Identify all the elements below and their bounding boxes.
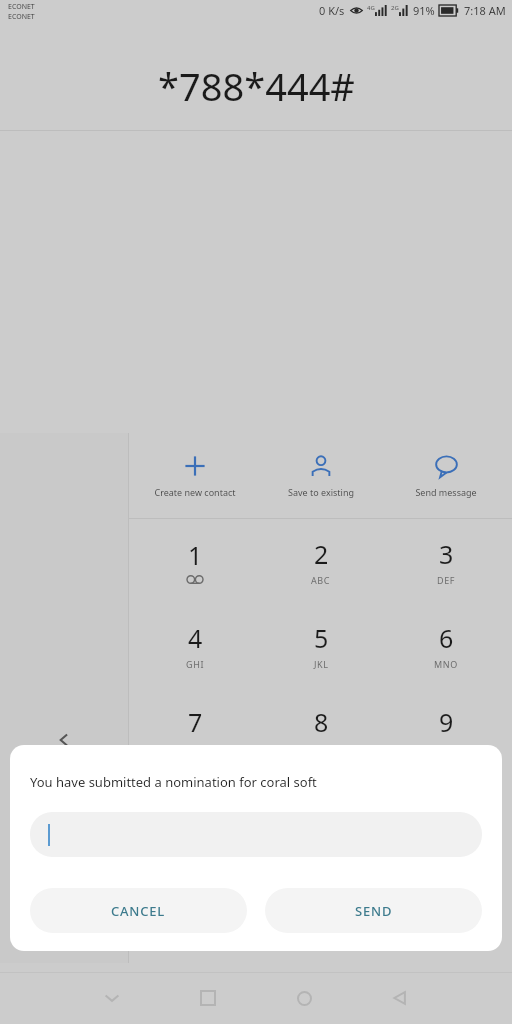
staticText: 2: [314, 537, 329, 571]
staticText: 1: [188, 538, 203, 572]
button[interactable]: Save to existing: [261, 447, 381, 504]
staticText: 7: [188, 705, 203, 739]
button[interactable]: 1: [135, 519, 255, 603]
staticText: 6: [439, 621, 454, 655]
button[interactable]: 7: [135, 687, 255, 771]
staticText: You have submitted a nomination for cora…: [30, 773, 317, 791]
staticText: PQRS: [182, 742, 208, 754]
staticText: 9: [439, 705, 454, 739]
button[interactable]: 9: [386, 687, 506, 771]
staticText: WXYZ: [433, 742, 460, 754]
staticText: 8: [314, 705, 329, 739]
staticText: SEND: [355, 902, 393, 920]
staticText: ECONET: [8, 12, 35, 22]
button[interactable]: 5: [261, 603, 381, 687]
staticText: 3: [439, 537, 454, 571]
button[interactable]: 6: [386, 603, 506, 687]
staticText: DEF: [437, 574, 456, 586]
button[interactable]: Expand: [44, 720, 84, 760]
staticText: MNO: [434, 658, 458, 670]
button[interactable]: CANCEL: [30, 888, 247, 933]
staticText: CANCEL: [111, 902, 166, 920]
button[interactable]: 8: [261, 687, 381, 771]
staticText: 4: [188, 621, 203, 655]
staticText: 2G: [391, 4, 399, 12]
button[interactable]: SEND: [265, 888, 482, 933]
staticText: JKL: [314, 658, 329, 670]
button[interactable]: Create new contact: [135, 447, 255, 504]
staticText: ECONET: [8, 2, 35, 12]
button[interactable]: Recents: [184, 974, 232, 1022]
staticText: GHI: [186, 658, 205, 670]
staticText: 0 K/s: [319, 3, 345, 18]
staticText: 4G: [367, 4, 375, 12]
staticText: *788*444#: [158, 60, 355, 112]
button[interactable]: [30, 812, 482, 857]
staticText: Create new contact: [154, 486, 236, 498]
staticText: Save to existing: [288, 486, 354, 498]
staticText: 91%: [413, 3, 435, 18]
button[interactable]: 2: [261, 519, 381, 603]
button[interactable]: 4: [135, 603, 255, 687]
staticText: 7:18 AM: [464, 3, 506, 18]
button[interactable]: Back: [376, 974, 424, 1022]
staticText: TUV: [312, 742, 331, 754]
staticText: Send message: [415, 486, 477, 498]
button[interactable]: Send message: [386, 447, 506, 504]
staticText: 5: [314, 621, 329, 655]
staticText: ABC: [311, 574, 331, 586]
button[interactable]: 3: [386, 519, 506, 603]
button[interactable]: Home: [280, 974, 328, 1022]
